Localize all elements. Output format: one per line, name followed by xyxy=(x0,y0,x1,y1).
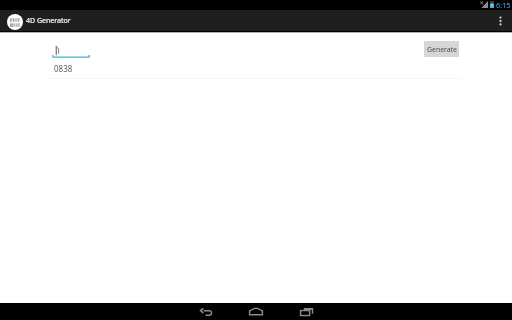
button[interactable]: More options xyxy=(488,10,512,31)
staticText: 6:15 xyxy=(496,0,511,10)
staticText: 4D Generator xyxy=(26,16,71,26)
button[interactable]: Recents xyxy=(281,303,331,320)
staticText: 0838 xyxy=(54,63,73,74)
button[interactable]: Generate xyxy=(424,41,459,57)
button[interactable]: Number input xyxy=(52,43,90,59)
button[interactable]: Back xyxy=(181,303,231,320)
button[interactable]: Home xyxy=(231,303,281,320)
staticText: Generate xyxy=(427,45,457,54)
